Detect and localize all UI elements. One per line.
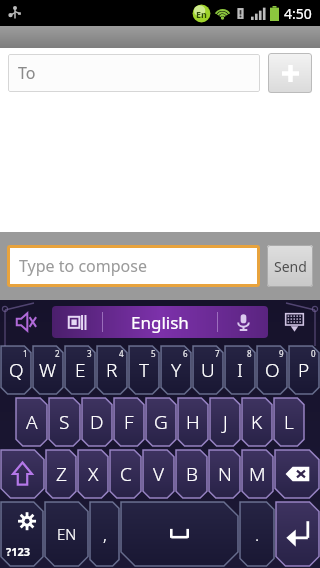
staticText: 0 [311,348,316,359]
button[interactable]: C [110,450,141,498]
button[interactable]: EN [45,502,88,566]
button[interactable]: R [97,346,127,394]
button[interactable]: N [209,450,240,498]
button[interactable]: T [129,346,159,394]
button[interactable]: E [65,346,95,394]
button[interactable]: Backspace [275,450,319,498]
button[interactable]: To [8,54,260,92]
staticText: P [298,357,310,383]
staticText: , [103,523,107,546]
staticText: English [131,311,189,334]
staticText: Y [171,357,182,383]
button[interactable]: M [242,450,273,498]
button[interactable]: P [289,346,319,394]
button[interactable]: , [90,502,119,566]
button[interactable]: Voice input [218,306,268,338]
staticText: 8 [247,348,252,359]
staticText: S [59,409,70,435]
staticText: 3 [87,348,92,359]
button[interactable]: Z [46,450,76,498]
staticText: T [139,357,150,383]
staticText: H [186,409,200,435]
staticText: D [90,409,104,435]
button[interactable]: D [82,398,112,446]
staticText: X [88,461,99,487]
button[interactable]: O [257,346,287,394]
staticText: B [186,461,198,487]
staticText: 4 [119,348,124,359]
staticText: En [196,8,207,20]
staticText: G [154,409,168,435]
staticText: 9 [279,348,284,359]
button[interactable]: Sound off [0,300,52,344]
staticText: . [255,523,260,546]
button[interactable]: Enter [276,502,319,566]
staticText: N [218,461,232,487]
button[interactable]: Send [267,245,313,287]
button[interactable]: Type to compose [10,248,257,284]
button[interactable]: J [210,398,240,446]
button[interactable]: S [49,398,80,446]
button[interactable]: H [178,398,208,446]
button[interactable]: A [16,398,47,446]
staticText: R [106,357,118,383]
staticText: ?123 [6,544,31,559]
button[interactable]: Space [121,502,238,566]
button[interactable]: . [240,502,274,566]
staticText: C [120,461,132,487]
staticText: V [153,461,165,487]
staticText: A [26,409,38,435]
staticText: J [223,409,228,435]
button[interactable]: Shift [1,450,44,498]
staticText: E [75,357,86,383]
staticText: Q [9,357,24,383]
button[interactable]: English [103,306,217,338]
staticText: L [284,409,294,435]
button[interactable]: Switch input method [52,306,102,338]
staticText: W [39,357,57,383]
staticText: Type to compose [19,255,147,277]
staticText: 1 [23,348,28,359]
button[interactable]: Q [1,346,31,394]
staticText: M [249,461,266,487]
button[interactable]: Add recipient [268,53,312,93]
button[interactable]: W [33,346,63,394]
staticText: 4:50 [284,4,312,23]
staticText: I [237,357,243,383]
staticText: 5 [151,348,156,359]
button[interactable]: F [114,398,144,446]
button[interactable]: K [242,398,272,446]
staticText: To [18,62,36,84]
button[interactable]: Hide keyboard [268,300,320,344]
staticText: K [251,409,263,435]
staticText: 6 [183,348,188,359]
button[interactable]: U [193,346,223,394]
staticText: Send [274,257,307,276]
button[interactable]: Y [161,346,191,394]
button[interactable]: Symbols [1,502,43,566]
button[interactable]: G [146,398,176,446]
button[interactable]: B [176,450,207,498]
button[interactable]: V [143,450,174,498]
staticText: EN [57,524,77,544]
staticText: F [124,409,134,435]
button[interactable]: X [78,450,108,498]
staticText: 7 [215,348,220,359]
staticText: Z [56,461,67,487]
button[interactable]: L [274,398,304,446]
staticText: O [265,357,280,383]
staticText: U [201,357,215,383]
staticText: 2 [55,348,60,359]
button[interactable]: I [225,346,255,394]
